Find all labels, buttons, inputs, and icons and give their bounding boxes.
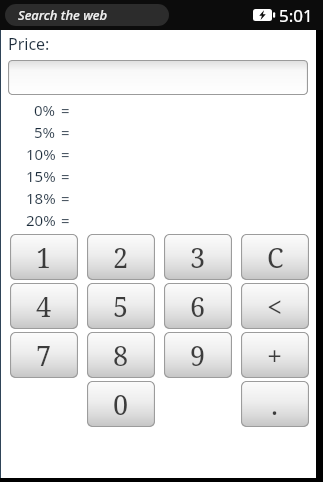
- button[interactable]: Price input: [8, 60, 308, 95]
- button[interactable]: 0%: [0, 99, 323, 121]
- staticText: Price:: [8, 33, 50, 55]
- staticText: 8: [113, 337, 129, 374]
- button[interactable]: Plus: [241, 332, 309, 378]
- staticText: 15%: [26, 166, 56, 186]
- staticText: 5%: [34, 122, 56, 142]
- button[interactable]: Backspace: [241, 283, 309, 329]
- staticText: +: [267, 337, 283, 374]
- staticText: =: [61, 188, 70, 208]
- staticText: =: [61, 144, 70, 164]
- staticText: 1: [36, 239, 52, 276]
- staticText: 2: [113, 239, 129, 276]
- button[interactable]: Clear: [241, 234, 309, 280]
- staticText: <: [267, 288, 283, 325]
- staticText: =: [61, 210, 70, 230]
- button[interactable]: 6: [164, 283, 232, 329]
- button[interactable]: 2: [87, 234, 155, 280]
- button[interactable]: 5%: [0, 121, 323, 143]
- button[interactable]: 5: [87, 283, 155, 329]
- button[interactable]: 0: [87, 381, 155, 427]
- staticText: 9: [190, 337, 206, 374]
- button[interactable]: 7: [10, 332, 78, 378]
- button[interactable]: 10%: [0, 143, 323, 165]
- staticText: C: [267, 239, 284, 276]
- staticText: 4: [36, 288, 52, 325]
- staticText: 10%: [26, 144, 56, 164]
- staticText: =: [61, 122, 70, 142]
- staticText: =: [61, 100, 70, 120]
- staticText: 5: [113, 288, 129, 325]
- staticText: 20%: [26, 210, 56, 230]
- button[interactable]: Search the web: [5, 4, 169, 26]
- button[interactable]: Decimal point: [241, 381, 309, 427]
- other: Battery charging: [253, 9, 275, 21]
- button[interactable]: 1: [10, 234, 78, 280]
- staticText: 3: [190, 239, 206, 276]
- staticText: 7: [36, 337, 52, 374]
- button[interactable]: 8: [87, 332, 155, 378]
- button[interactable]: 15%: [0, 165, 323, 187]
- staticText: 0: [113, 386, 129, 423]
- staticText: 18%: [26, 188, 56, 208]
- staticText: 6: [190, 288, 206, 325]
- staticText: 5:01: [279, 4, 313, 27]
- button[interactable]: 9: [164, 332, 232, 378]
- staticText: .: [271, 385, 279, 423]
- button[interactable]: 18%: [0, 187, 323, 209]
- staticText: =: [61, 166, 70, 186]
- button[interactable]: 3: [164, 234, 232, 280]
- button[interactable]: 4: [10, 283, 78, 329]
- staticText: 0%: [34, 100, 56, 120]
- button[interactable]: 20%: [0, 209, 323, 231]
- staticText: Search the web: [18, 6, 108, 24]
